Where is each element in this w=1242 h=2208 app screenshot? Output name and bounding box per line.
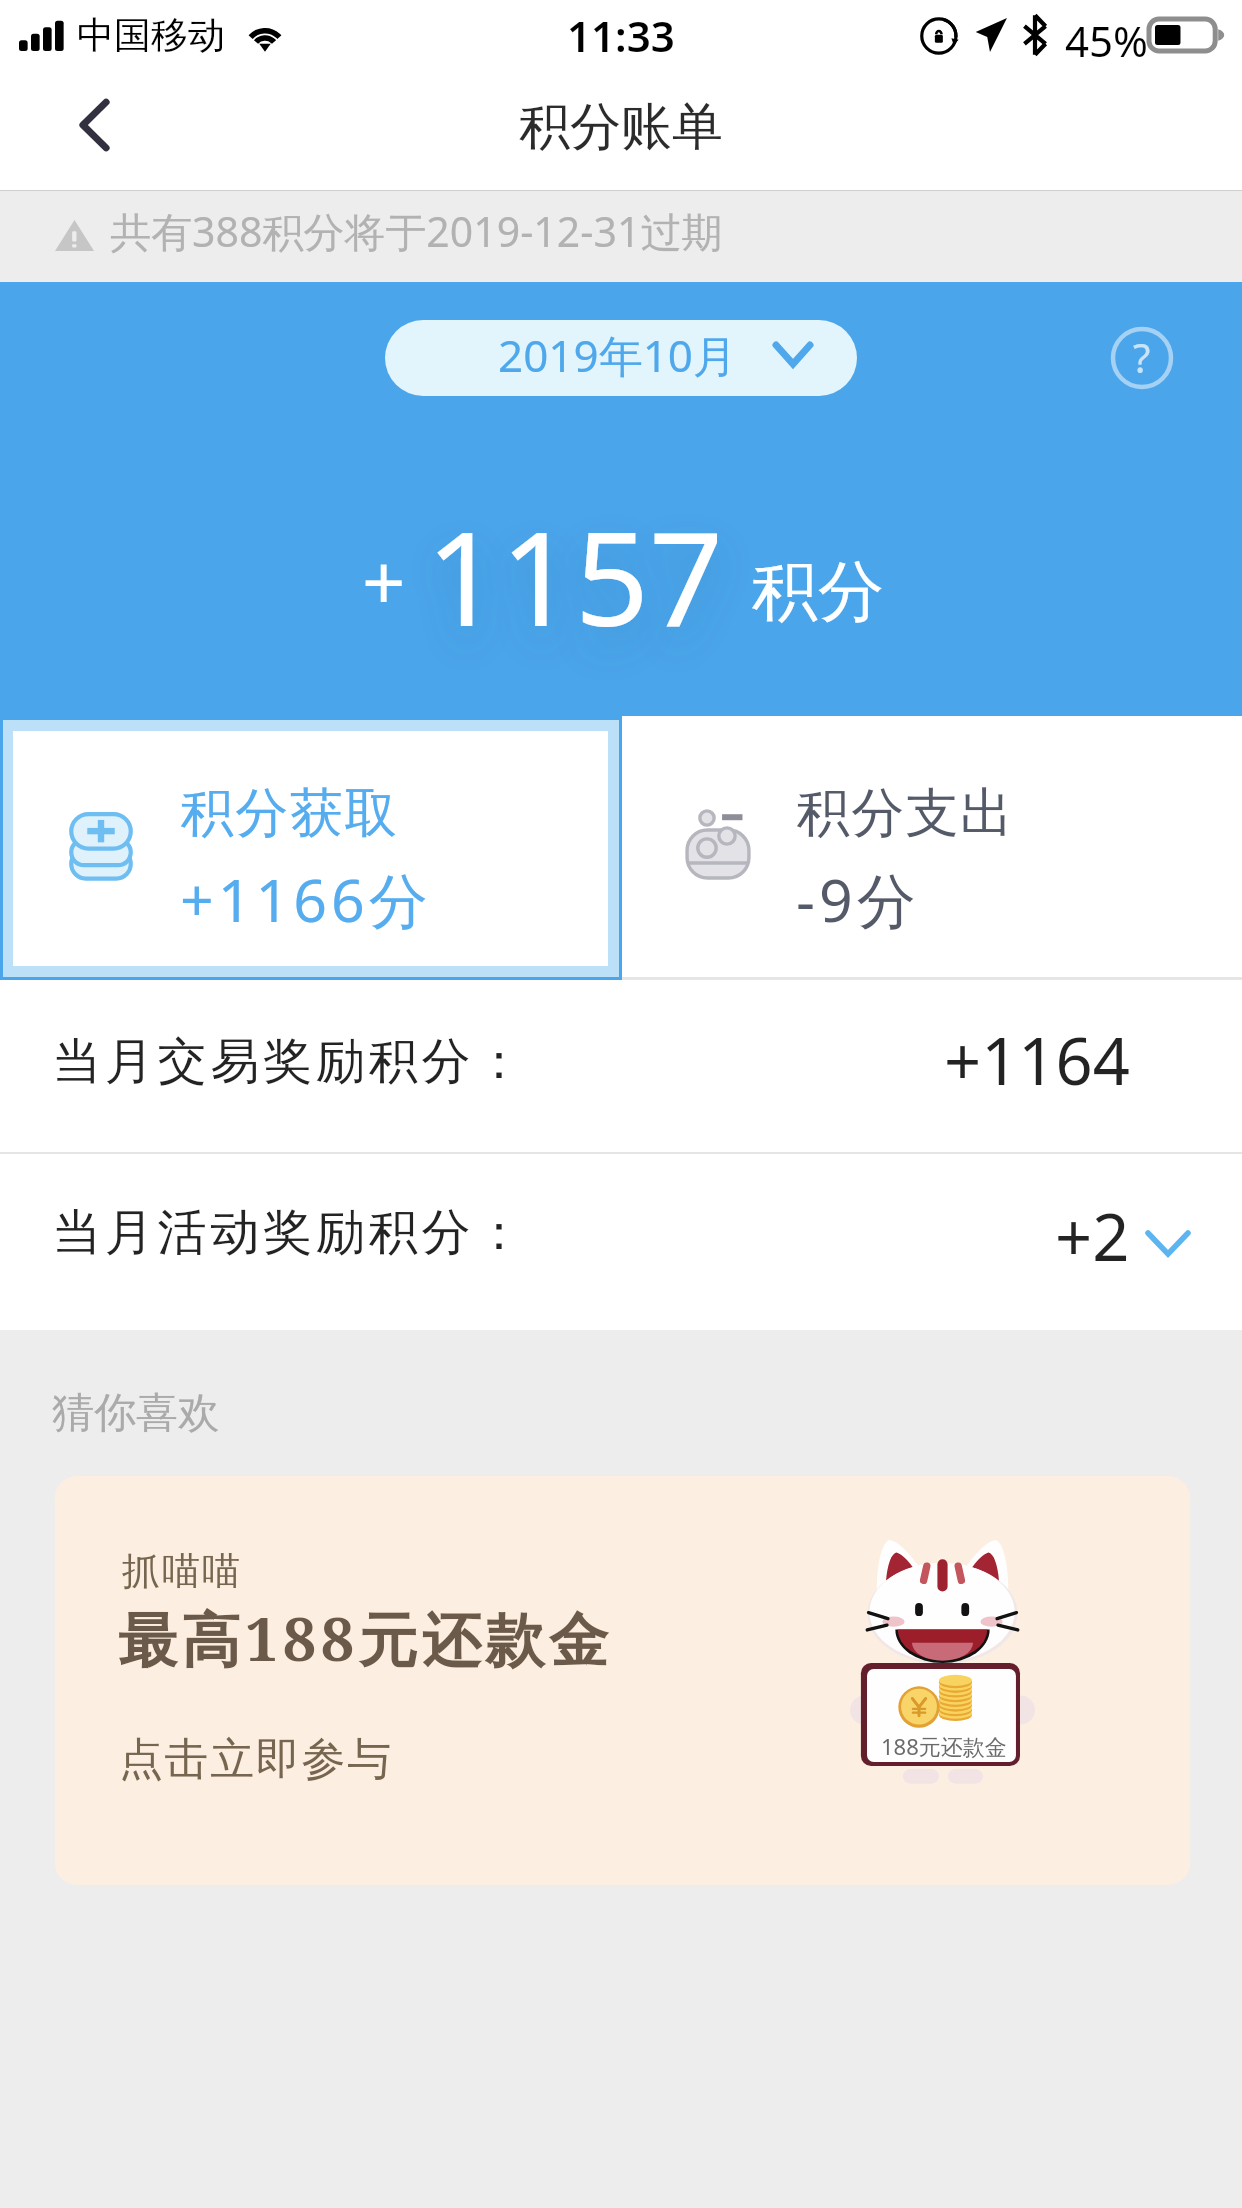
button[interactable]: 抓喵喵 [55, 1476, 1190, 1885]
staticText: 188元还款金 [881, 1731, 1007, 1761]
staticText: 点击立即参与 [119, 1732, 393, 1787]
staticText: 45% [1065, 12, 1148, 69]
staticText: + [362, 530, 406, 634]
button[interactable]: 2019年10月 [385, 320, 857, 396]
staticText: ? [1133, 330, 1151, 384]
staticText: 积分支出 [796, 780, 1014, 847]
button[interactable] [0, 1154, 1242, 1330]
staticText: 猜你喜欢 [52, 1387, 220, 1440]
staticText: 共有388积分将于2019-12-31过期 [110, 203, 723, 259]
staticText: 2019年10月 [498, 325, 738, 385]
staticText: 积分账单 [519, 95, 723, 159]
button[interactable] [0, 980, 1242, 1152]
button[interactable] [622, 716, 1242, 980]
staticText: +1164 [944, 1016, 1130, 1105]
staticText: 当月交易奖励积分： [52, 1031, 528, 1093]
staticText: 积分 [752, 550, 884, 633]
staticText: 1157 [426, 487, 724, 664]
staticText: -9分 [796, 859, 920, 940]
staticText: 中国移动 [77, 12, 225, 59]
staticText: 抓喵喵 [121, 1547, 241, 1595]
staticText: +1166分 [180, 859, 432, 940]
staticText: 11:33 [567, 7, 675, 64]
button[interactable]: Back [30, 70, 130, 190]
button[interactable] [13, 731, 608, 966]
staticText: 积分获取 [180, 780, 398, 847]
staticText: 最高188元还款金 [118, 1598, 613, 1679]
staticText: +2 [1055, 1192, 1130, 1281]
button[interactable]: Help [1104, 320, 1180, 396]
staticText: 当月活动奖励积分： [52, 1202, 528, 1264]
